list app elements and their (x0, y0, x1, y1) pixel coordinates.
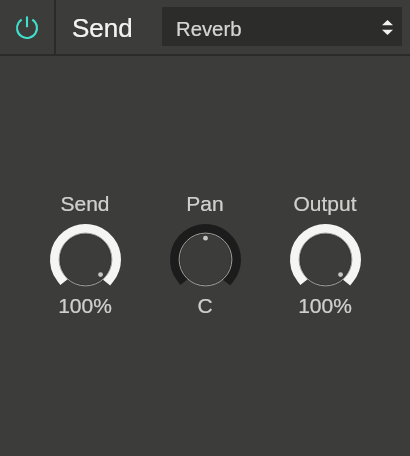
button[interactable]: Send 100% (25, 190, 145, 316)
button[interactable]: Power (0, 0, 54, 55)
button[interactable]: Reverb (162, 7, 402, 46)
staticText: 100% (298, 294, 352, 317)
staticText: C (197, 294, 213, 317)
staticText: Send (72, 13, 133, 42)
staticText: 100% (58, 294, 112, 317)
button[interactable]: Pan C (145, 190, 265, 316)
staticText: Output (293, 192, 357, 215)
staticText: Pan (186, 192, 224, 215)
staticText: Reverb (176, 18, 242, 41)
staticText: Send (60, 192, 110, 215)
button[interactable]: Output 100% (265, 190, 385, 316)
